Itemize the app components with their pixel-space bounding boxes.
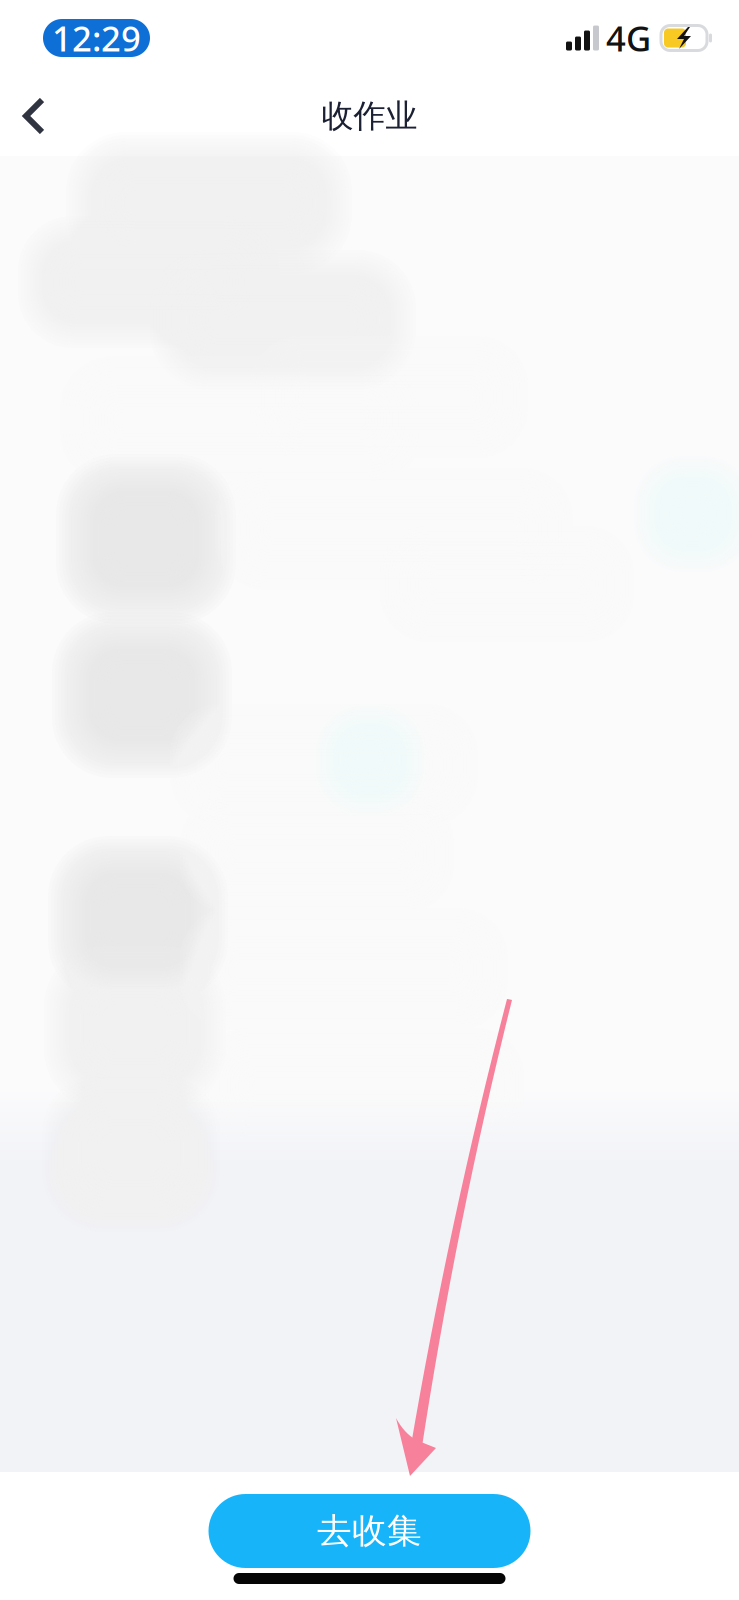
staticText: 12:29 (52, 15, 141, 61)
staticText: 收作业 (321, 96, 417, 136)
staticText: 4G (606, 15, 651, 61)
staticText: 去收集 (317, 1510, 422, 1552)
button[interactable]: Back (0, 78, 78, 154)
button[interactable]: 去收集 (208, 1494, 530, 1568)
